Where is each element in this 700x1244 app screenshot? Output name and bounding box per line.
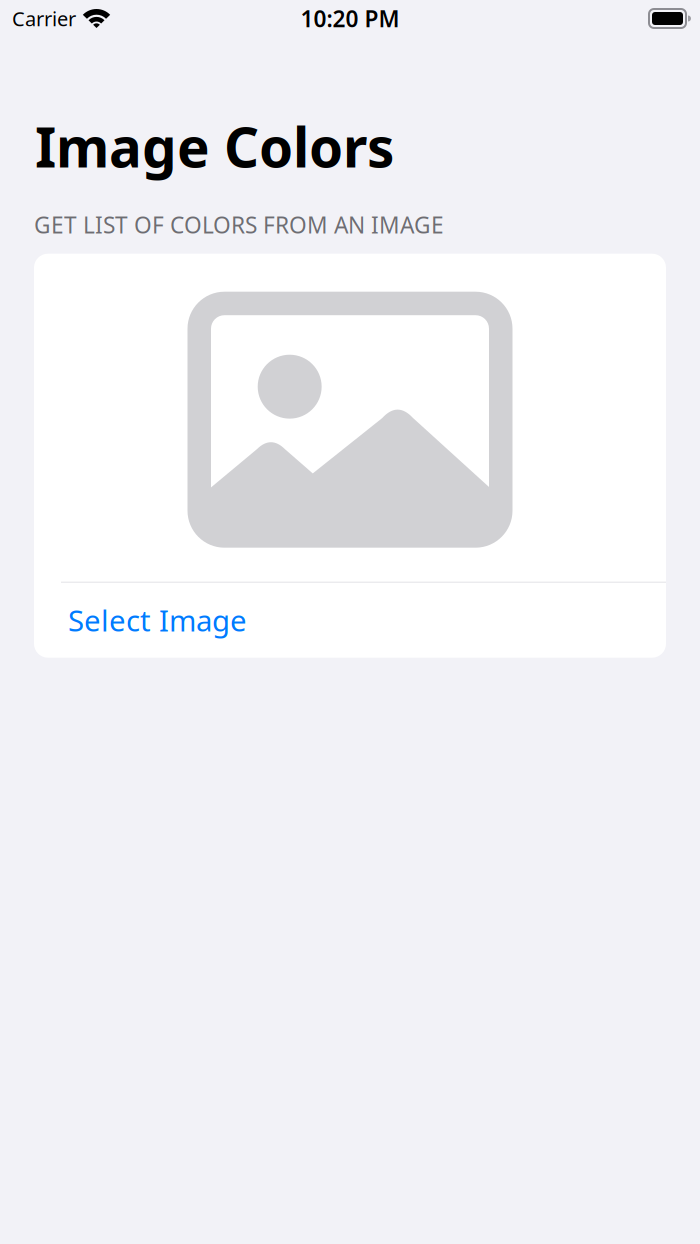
staticText: Select Image xyxy=(68,601,247,640)
staticText: Image Colors xyxy=(35,110,394,183)
staticText: GET LIST OF COLORS FROM AN IMAGE xyxy=(34,210,444,240)
staticText: Carrier xyxy=(12,5,76,32)
staticText: 10:20 PM xyxy=(300,3,399,33)
button[interactable]: Select Image xyxy=(34,583,666,658)
